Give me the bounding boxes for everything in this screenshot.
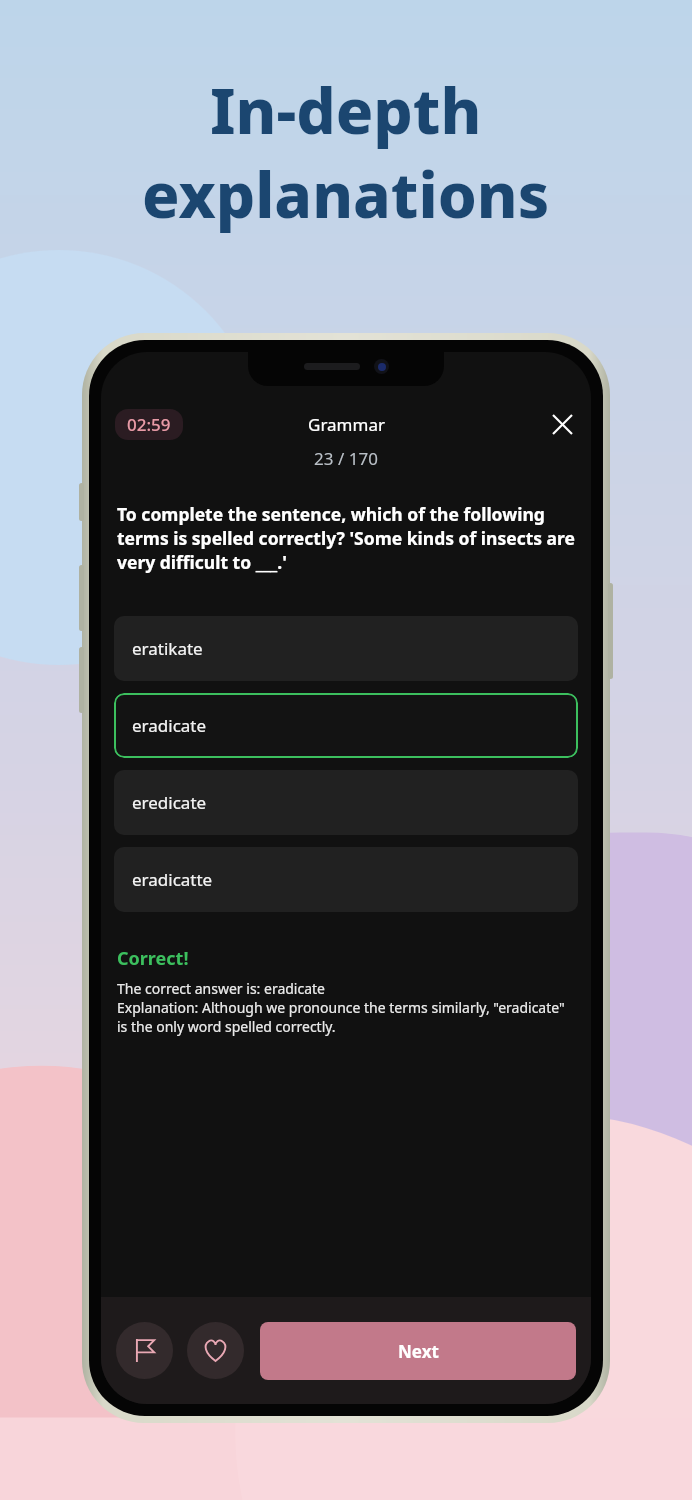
- staticText: Next: [398, 1340, 439, 1363]
- button[interactable]: eradicate: [114, 693, 578, 758]
- staticText: explanations: [142, 152, 550, 236]
- staticText: To complete the sentence, which of the f…: [117, 502, 575, 574]
- button[interactable]: eradicatte: [114, 847, 578, 912]
- button[interactable]: Next: [260, 1322, 576, 1380]
- staticText: 02:59: [127, 413, 171, 436]
- button[interactable]: Favourite: [187, 1322, 244, 1379]
- button[interactable]: eratikate: [114, 616, 578, 681]
- staticText: 23 / 170: [101, 447, 591, 470]
- staticText: eradicatte: [132, 868, 213, 891]
- staticText: In-depth: [210, 68, 482, 152]
- staticText: eredicate: [132, 791, 207, 814]
- button[interactable]: eredicate: [114, 770, 578, 835]
- button[interactable]: Close: [545, 407, 579, 441]
- button[interactable]: 02:59: [115, 409, 183, 440]
- staticText: eradicate: [132, 714, 207, 737]
- staticText: Correct!: [117, 946, 189, 971]
- staticText: Grammar: [308, 413, 385, 436]
- staticText: eratikate: [132, 637, 203, 660]
- button[interactable]: Flag question: [116, 1322, 173, 1379]
- staticText: The correct answer is: eradicate Explana…: [117, 979, 575, 1036]
